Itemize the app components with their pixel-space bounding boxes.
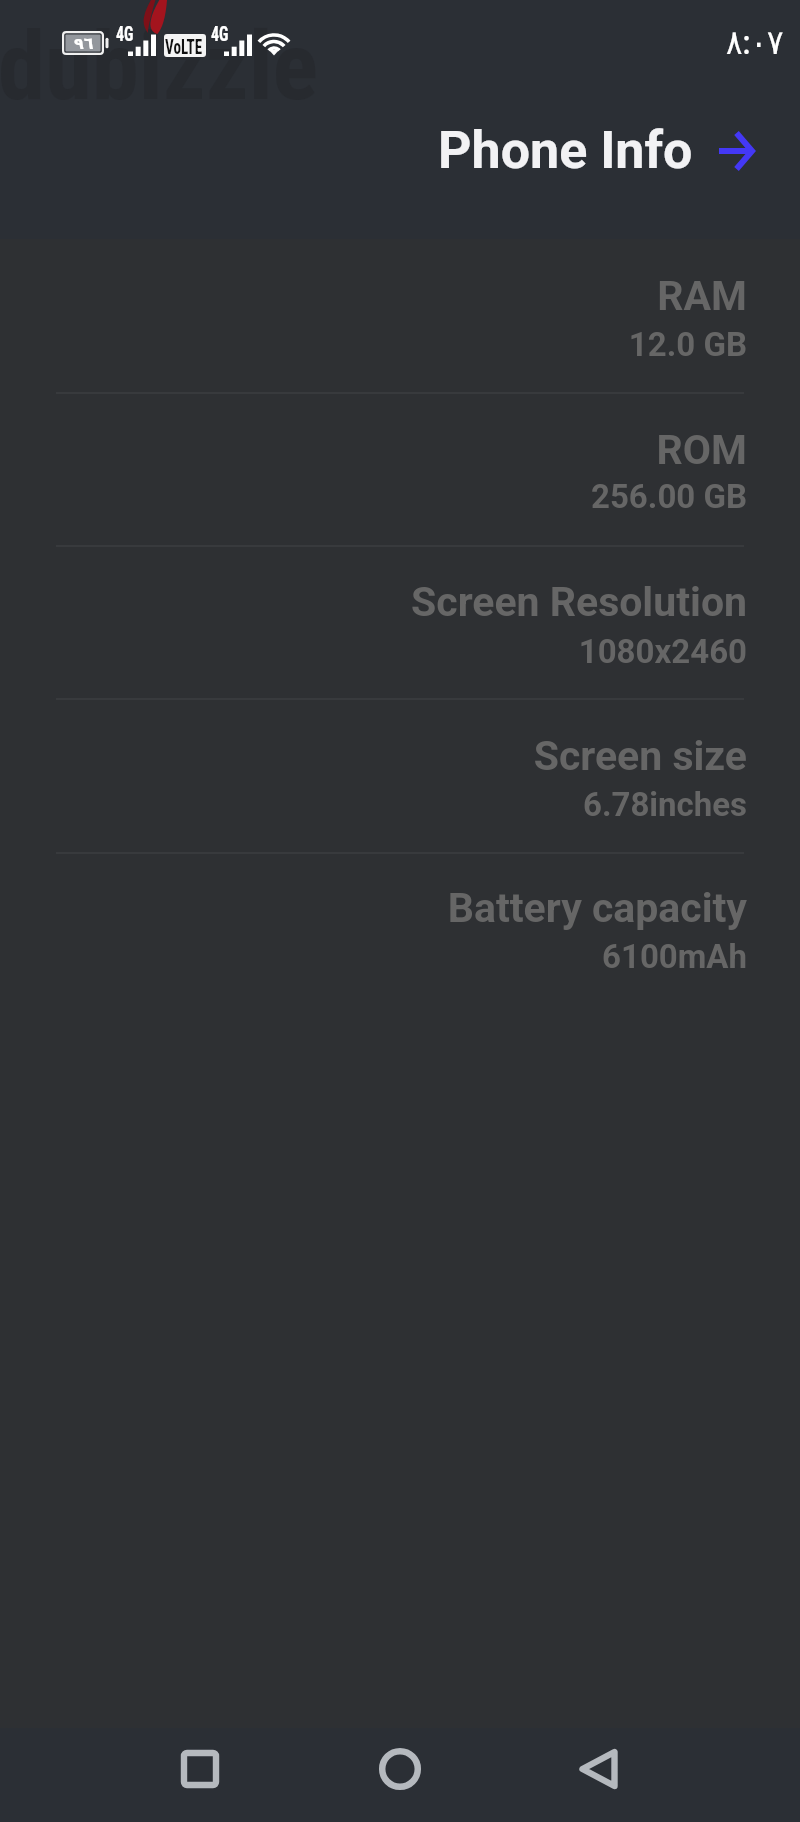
staticText: ٨:٠٧	[726, 22, 784, 62]
staticText: 256.00 GB	[591, 477, 747, 516]
button[interactable]: Phone Info	[425, 108, 775, 186]
staticText: ROM	[656, 426, 747, 474]
staticText: 4G	[116, 22, 133, 47]
other: Next	[717, 131, 757, 171]
button[interactable]: Screen size	[0, 698, 800, 851]
staticText: Battery capacity	[447, 884, 747, 932]
staticText: 4G	[211, 22, 228, 47]
staticText: 6.78inches	[582, 785, 747, 824]
staticText: Screen size	[533, 732, 747, 780]
staticText: RAM	[657, 272, 747, 320]
staticText: 6100mAh	[602, 937, 747, 976]
button[interactable]: ROM	[0, 392, 800, 545]
button[interactable]: Home	[360, 1729, 440, 1809]
staticText: dubizzle	[0, 11, 319, 122]
button[interactable]: Screen Resolution	[0, 544, 800, 697]
staticText: ٩٦	[74, 34, 94, 53]
staticText: 1080x2460	[578, 632, 747, 671]
button[interactable]: Battery capacity	[0, 850, 800, 1003]
button[interactable]: RAM	[0, 238, 800, 391]
staticText: VoLTE	[165, 35, 202, 60]
staticText: Screen Resolution	[411, 578, 747, 626]
button[interactable]: Back	[560, 1729, 640, 1809]
staticText: Phone Info	[438, 120, 693, 181]
button[interactable]: Recent apps	[160, 1729, 240, 1809]
staticText: 12.0 GB	[628, 325, 747, 364]
